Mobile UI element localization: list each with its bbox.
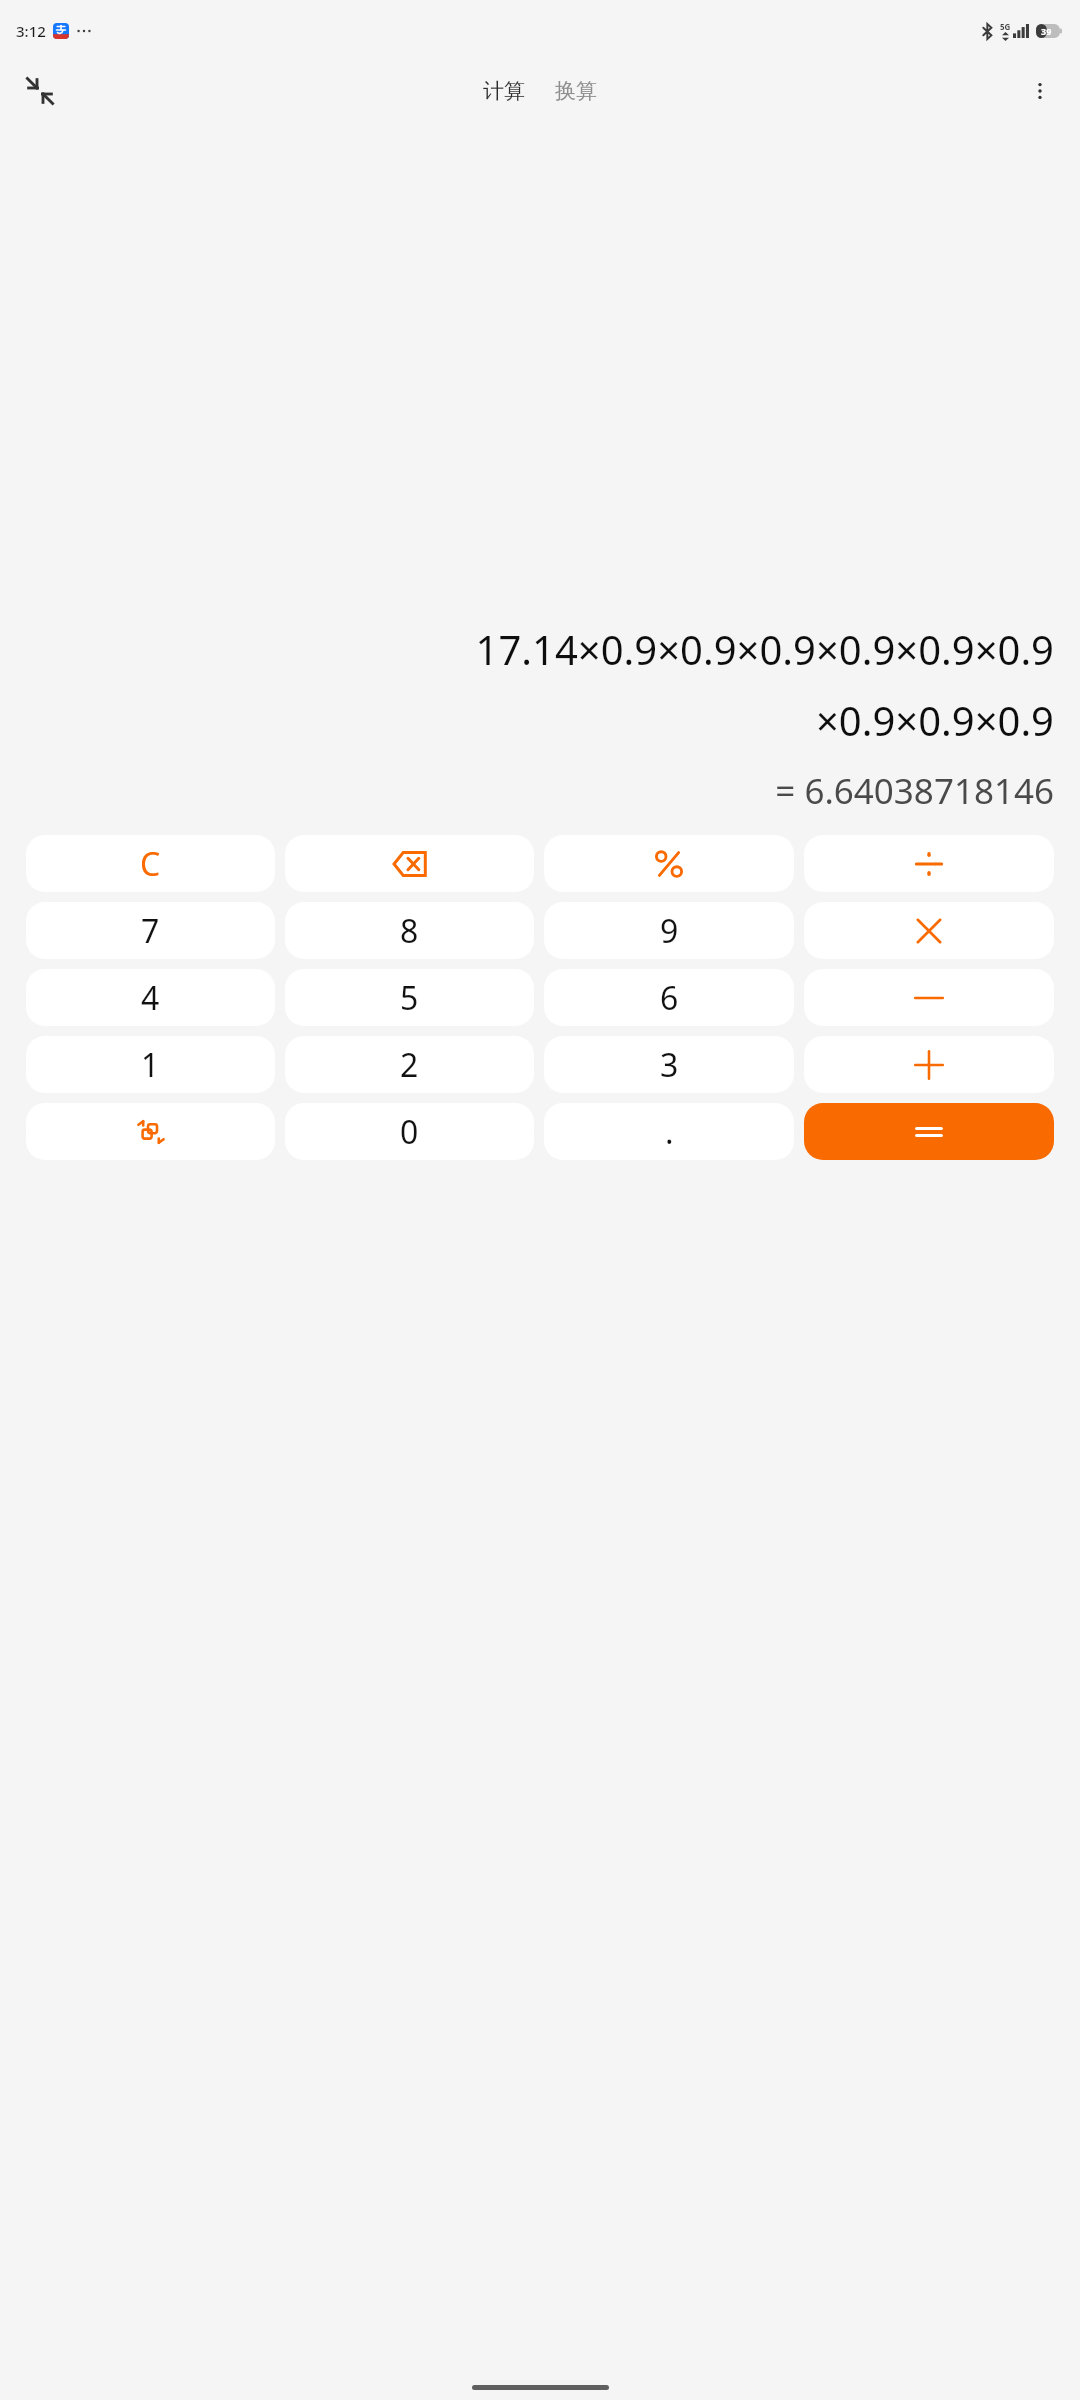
button[interactable]: Plus — [804, 1036, 1054, 1093]
staticText: C — [140, 842, 161, 886]
button[interactable]: 计算 — [475, 72, 533, 110]
staticText: . — [665, 1110, 674, 1154]
staticText: 0 — [400, 1110, 419, 1154]
button[interactable]: 8 — [285, 902, 534, 959]
button[interactable]: 4 — [26, 969, 275, 1026]
button[interactable]: Multiply — [804, 902, 1054, 959]
button[interactable]: Divide — [804, 835, 1054, 892]
staticText: 5 — [400, 976, 419, 1020]
button[interactable]: . — [544, 1103, 794, 1160]
staticText: 8 — [400, 909, 419, 953]
button[interactable]: More options — [1016, 67, 1064, 115]
button[interactable]: Percent — [544, 835, 794, 892]
button[interactable]: 9 — [544, 902, 794, 959]
button[interactable]: 换算 — [547, 72, 605, 110]
button[interactable]: 2 — [285, 1036, 534, 1093]
staticText: = 6.64038718146 — [775, 767, 1054, 815]
staticText: 2 — [400, 1043, 419, 1087]
button[interactable]: Equals — [804, 1103, 1054, 1160]
button[interactable]: Minus — [804, 969, 1054, 1026]
button[interactable]: C — [26, 835, 275, 892]
button[interactable]: 0 — [285, 1103, 534, 1160]
staticText: 39 — [1041, 25, 1052, 37]
button[interactable]: 6 — [544, 969, 794, 1026]
staticText: 17.14×0.9×0.9×0.9×0.9×0.9×0.9 — [475, 622, 1054, 676]
staticText: 5G — [1000, 21, 1011, 32]
staticText: ×0.9×0.9×0.9 — [815, 693, 1054, 747]
staticText: 换算 — [555, 78, 597, 104]
button[interactable]: 1 — [26, 1036, 275, 1093]
button[interactable]: 3 — [544, 1036, 794, 1093]
button[interactable]: Collapse — [14, 65, 66, 117]
staticText: 3 — [660, 1043, 679, 1087]
staticText: 3:12 — [16, 21, 46, 41]
button[interactable]: 5 — [285, 969, 534, 1026]
staticText: 1 — [141, 1043, 160, 1087]
staticText: 4 — [141, 976, 160, 1020]
button[interactable]: Backspace — [285, 835, 534, 892]
button[interactable]: Convert units — [26, 1103, 275, 1160]
staticText: 9 — [660, 909, 679, 953]
staticText: 7 — [141, 909, 160, 953]
staticText: 计算 — [483, 78, 525, 104]
button[interactable]: 7 — [26, 902, 275, 959]
staticText: 6 — [660, 976, 679, 1020]
